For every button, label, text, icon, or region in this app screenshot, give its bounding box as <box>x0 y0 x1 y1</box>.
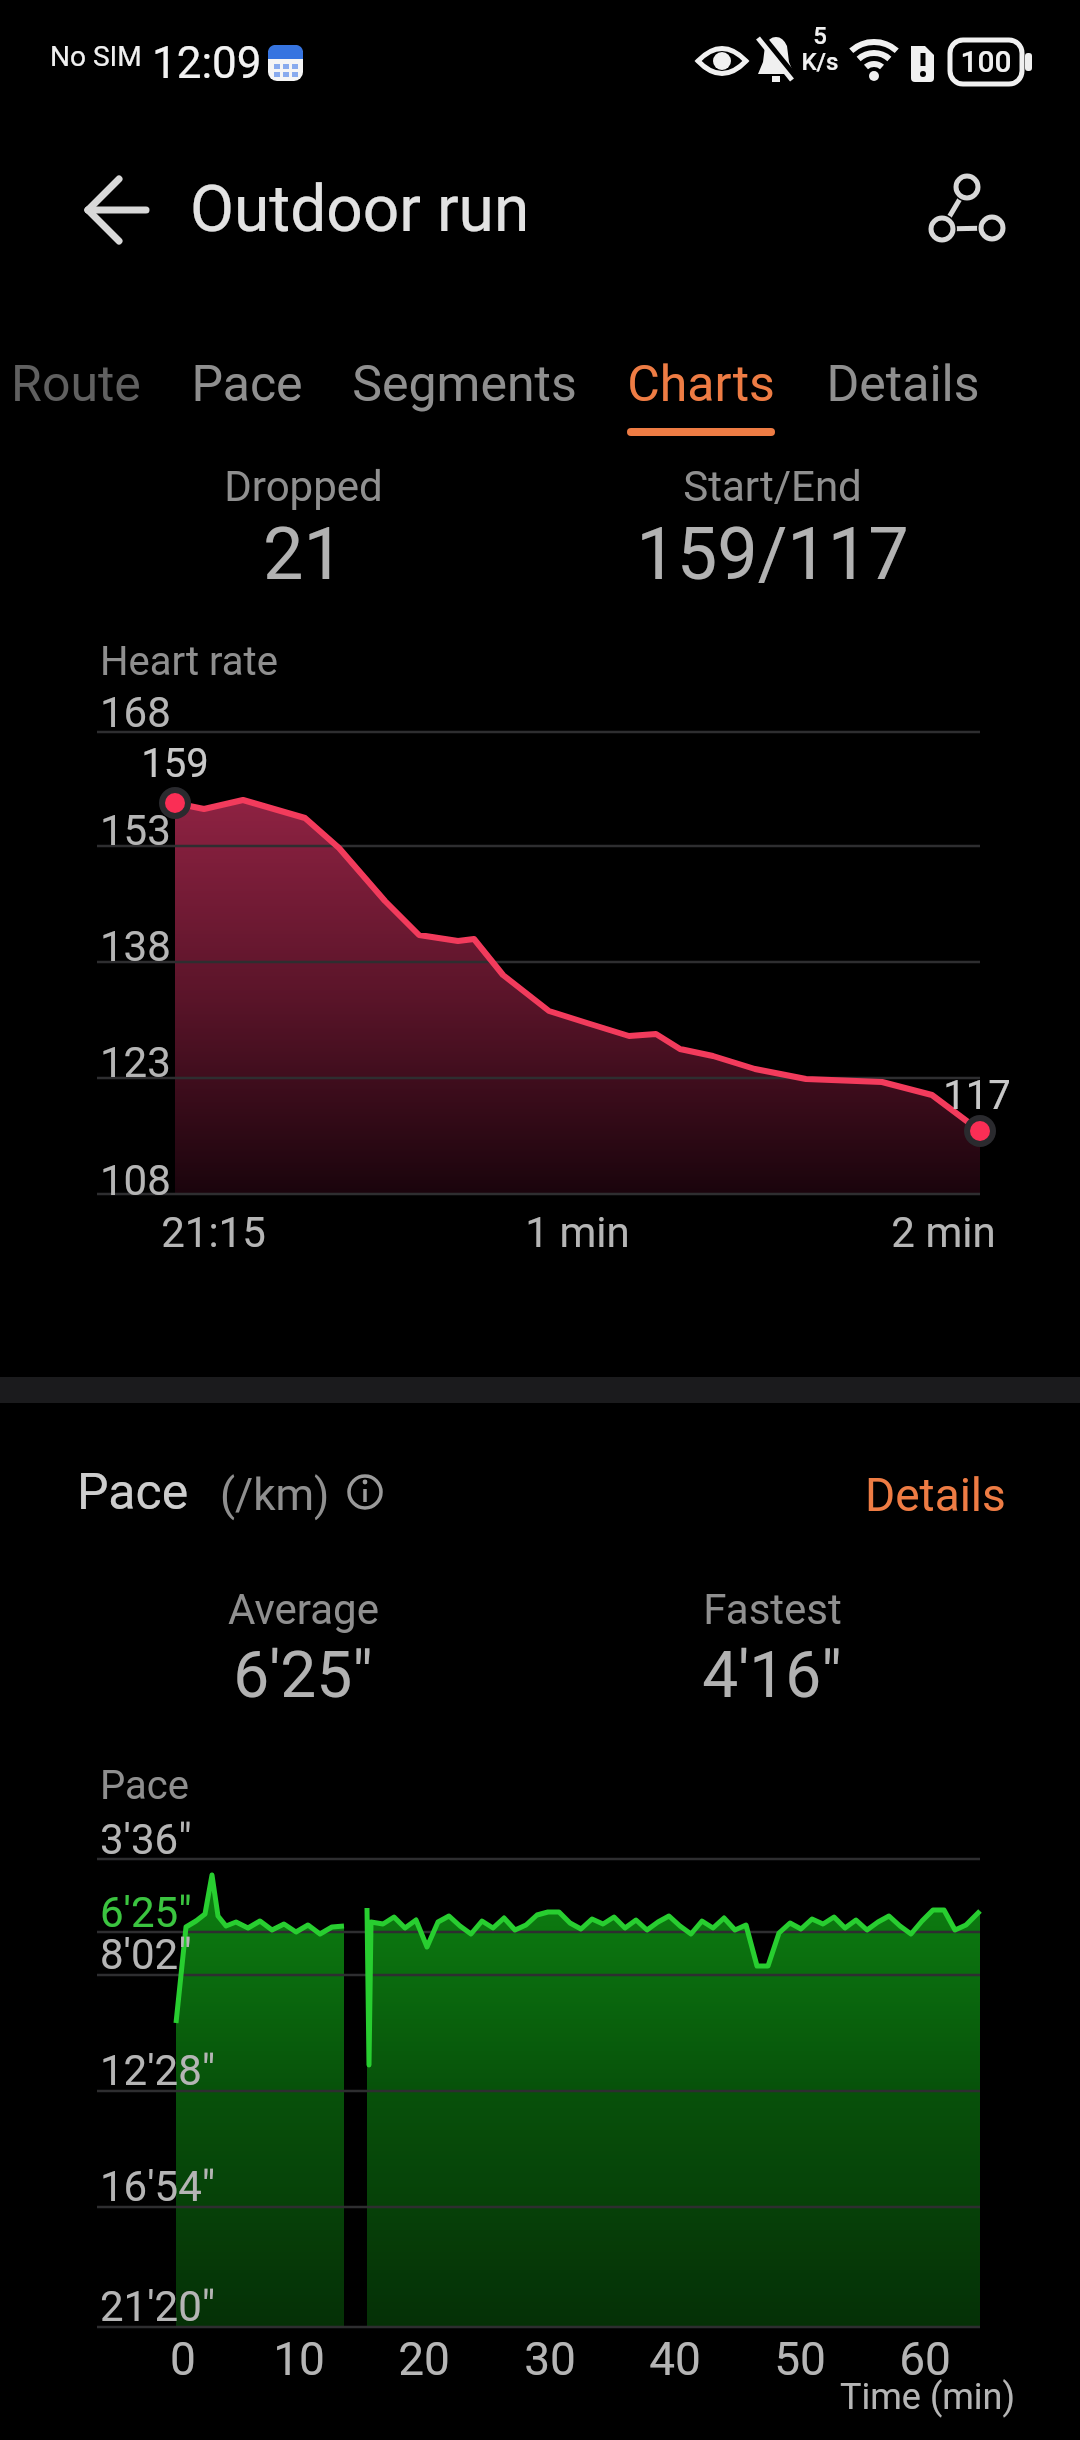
staticText: 3'36" <box>100 1815 192 1864</box>
staticText: (/km) <box>220 1469 330 1521</box>
staticText: 108 <box>100 1156 171 1205</box>
staticText: Details <box>865 1468 1006 1522</box>
button[interactable] <box>910 160 1020 260</box>
staticText: 1 min <box>525 1208 630 1257</box>
button[interactable]: Details <box>830 1460 1040 1530</box>
staticText: 20 <box>398 2332 450 2386</box>
staticText: Average <box>228 1585 379 1634</box>
staticText: 12'28" <box>100 2046 216 2095</box>
staticText: 50 <box>774 2332 826 2386</box>
button[interactable]: Charts <box>451 355 951 414</box>
staticText: Time (min) <box>840 2376 1015 2418</box>
staticText: Pace <box>191 355 303 414</box>
staticText: Fastest <box>703 1585 842 1634</box>
staticText: Outdoor run <box>190 172 530 247</box>
staticText: 4'16" <box>702 1638 842 1713</box>
staticText: Details <box>826 355 980 414</box>
staticText: 30 <box>524 2332 576 2386</box>
staticText: 168 <box>100 688 171 737</box>
staticText: 2 min <box>891 1208 996 1257</box>
staticText: 123 <box>100 1038 171 1087</box>
staticText: 159 <box>141 740 209 787</box>
staticText: 21 <box>263 512 344 596</box>
staticText: 16'54" <box>100 2162 216 2211</box>
staticText: Route <box>11 355 141 414</box>
button[interactable]: Details <box>653 355 1080 414</box>
staticText: Pace <box>100 1762 189 1809</box>
staticText: Pace <box>77 1463 189 1522</box>
staticText: No SIM <box>50 40 142 73</box>
staticText: 21'20" <box>100 2282 216 2331</box>
staticText: Dropped <box>224 462 383 511</box>
staticText: 60 <box>899 2332 951 2386</box>
staticText: 40 <box>649 2332 701 2386</box>
staticText: 0 <box>170 2332 196 2386</box>
button[interactable]: Segments <box>214 355 714 414</box>
staticText: 8'02" <box>100 1930 192 1979</box>
staticText: 5 <box>813 22 827 50</box>
staticText: 21:15 <box>161 1208 266 1257</box>
staticText: 153 <box>100 806 171 855</box>
staticText: 138 <box>100 922 171 971</box>
staticText: Segments <box>352 355 577 414</box>
staticText: 6'25" <box>233 1638 373 1713</box>
staticText: 159/117 <box>636 512 909 596</box>
staticText: 117 <box>943 1072 1011 1119</box>
staticText: 10 <box>273 2332 325 2386</box>
staticText: 12:09 <box>152 37 262 89</box>
staticText: 6'25" <box>100 1888 192 1937</box>
staticText: K/s <box>801 48 839 76</box>
button[interactable] <box>60 160 160 260</box>
staticText: Start/End <box>683 462 862 511</box>
staticText: 100 <box>960 44 1012 79</box>
staticText: Charts <box>627 355 775 414</box>
button[interactable]: Pace <box>0 355 497 414</box>
staticText: Heart rate <box>100 638 278 685</box>
button[interactable]: Route <box>0 355 326 414</box>
